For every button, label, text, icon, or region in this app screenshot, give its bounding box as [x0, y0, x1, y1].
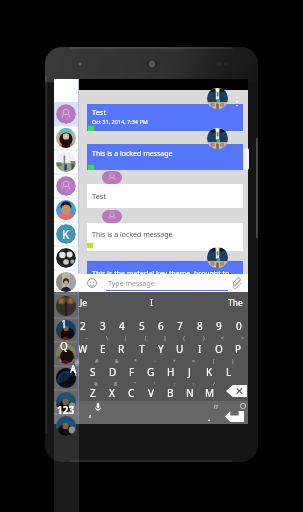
staticText: { — [183, 335, 185, 342]
button[interactable]: ] — [151, 335, 170, 358]
staticText: This is a locked message — [92, 149, 173, 159]
button[interactable]: ; — [180, 381, 199, 401]
button[interactable]: Je — [80, 297, 88, 309]
staticText: A — [70, 362, 77, 376]
staticText: \ — [106, 335, 108, 342]
button[interactable]: > — [229, 335, 248, 358]
button[interactable]: : — [161, 381, 180, 401]
staticText: 123 — [57, 403, 75, 417]
button[interactable]: Conversation — [56, 200, 76, 220]
button[interactable]: Conversation — [56, 368, 76, 388]
button[interactable]: 7 — [170, 313, 189, 335]
button[interactable]: 4 — [112, 313, 131, 335]
button[interactable]: Contact avatar — [102, 210, 122, 223]
button[interactable]: , — [89, 406, 92, 420]
button[interactable]: I — [150, 297, 153, 309]
staticText: Test — [92, 191, 107, 201]
staticText: M — [205, 386, 215, 400]
staticText: | — [124, 335, 127, 342]
staticText: This is the material key theme, brought … — [92, 269, 243, 282]
button[interactable]: Test — [87, 184, 243, 208]
button[interactable]: " — [122, 381, 141, 401]
button[interactable]: This is a locked message — [87, 223, 243, 251]
staticText: K — [62, 226, 70, 242]
button[interactable]: 6 — [151, 313, 170, 335]
staticText: 5 — [139, 319, 145, 333]
button[interactable]: % — [83, 381, 102, 401]
button[interactable]: } — [190, 335, 209, 358]
staticText: Y — [158, 342, 164, 356]
staticText: P — [235, 342, 242, 356]
button[interactable]: 1 — [54, 313, 73, 335]
button[interactable]: Contact avatar — [102, 171, 122, 184]
button[interactable]: | — [112, 335, 131, 358]
staticText: 7 — [177, 319, 183, 333]
button[interactable]: 5 — [132, 313, 151, 335]
staticText: " — [134, 381, 137, 388]
button[interactable]: [ — [132, 335, 151, 358]
button[interactable]: Conversation — [56, 392, 76, 412]
button[interactable]: Conversation — [56, 344, 76, 364]
button[interactable]: + — [161, 358, 180, 381]
button[interactable]: Conversation — [56, 296, 76, 316]
staticText: Q — [60, 342, 68, 356]
staticText: U — [176, 342, 184, 356]
button[interactable]: This is a locked message — [87, 144, 243, 170]
button[interactable]: 0 — [229, 313, 248, 335]
button[interactable]: 9 — [209, 313, 228, 335]
button[interactable]: Contact photo — [207, 247, 228, 268]
button[interactable]: ' — [141, 381, 160, 401]
staticText: = — [192, 358, 195, 365]
staticText: N — [186, 386, 194, 400]
button[interactable]: This is the material key theme, brought … — [87, 261, 243, 274]
staticText: C — [128, 386, 135, 400]
button[interactable]: ~ — [73, 335, 92, 358]
button[interactable]: * — [122, 358, 141, 381]
other: Voice input — [94, 402, 102, 413]
button[interactable]: Conversation — [56, 104, 76, 124]
button[interactable]: = — [180, 358, 199, 381]
button[interactable]: / — [200, 381, 219, 401]
button[interactable]: Test — [87, 104, 243, 131]
staticText: Type message — [108, 279, 155, 289]
button[interactable]: 2 — [73, 313, 92, 335]
staticText: } — [203, 335, 205, 342]
button[interactable]: ) — [219, 358, 238, 381]
button[interactable]: - — [141, 358, 160, 381]
button[interactable]: 3 — [93, 313, 112, 335]
staticText: > — [241, 335, 244, 342]
staticText: H — [167, 365, 175, 379]
staticText: & — [115, 358, 119, 365]
staticText: * — [134, 358, 137, 365]
button[interactable]: 8 — [102, 381, 121, 401]
button[interactable]: Conversation — [56, 128, 76, 148]
button[interactable]: Backspace — [226, 385, 247, 397]
button[interactable]: # — [83, 358, 102, 381]
staticText: : — [174, 381, 176, 388]
button[interactable]: ( — [200, 358, 219, 381]
button[interactable]: More options — [234, 96, 240, 107]
button[interactable]: Conversation — [56, 224, 76, 244]
button[interactable]: \ — [93, 335, 112, 358]
other: Enter — [225, 411, 244, 422]
button[interactable]: & — [103, 358, 122, 381]
button[interactable]: Conversation — [56, 176, 76, 196]
button[interactable]: Conversation — [56, 272, 76, 292]
button[interactable]: Contact photo — [207, 88, 228, 109]
staticText: + — [173, 358, 176, 365]
button[interactable]: < — [209, 335, 228, 358]
button[interactable]: 8 — [190, 313, 209, 335]
button[interactable]: Q — [54, 335, 73, 358]
button[interactable]: Conversation — [56, 152, 76, 172]
staticText: This is a locked message — [92, 230, 173, 240]
staticText: 4 — [119, 319, 125, 333]
button[interactable]: The — [228, 297, 243, 309]
button[interactable]: Conversation — [56, 320, 76, 340]
button[interactable]: Conversation — [56, 248, 76, 268]
staticText: J — [188, 365, 191, 379]
button[interactable]: Contact photo — [207, 128, 228, 149]
button[interactable]: Conversation — [56, 416, 76, 436]
button[interactable]: @ — [64, 358, 83, 381]
staticText: 0 — [236, 319, 242, 333]
button[interactable]: { — [170, 335, 189, 358]
